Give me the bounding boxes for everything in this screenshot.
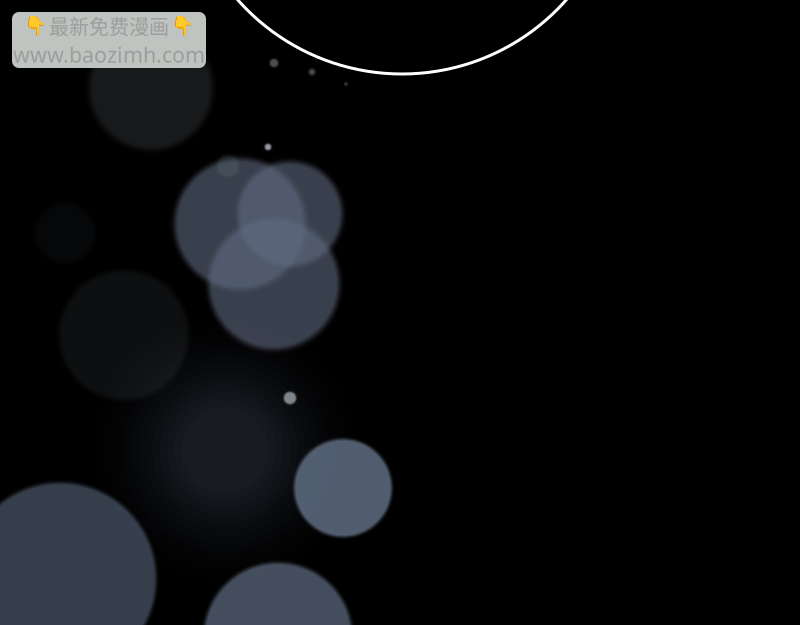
staticText: 最新免费漫画 [49, 11, 169, 40]
staticText: www.baozimh.com [13, 40, 205, 69]
staticText: 👇 [171, 15, 194, 36]
button[interactable]: 👇 [12, 12, 206, 68]
staticText: 👇 [24, 15, 47, 36]
